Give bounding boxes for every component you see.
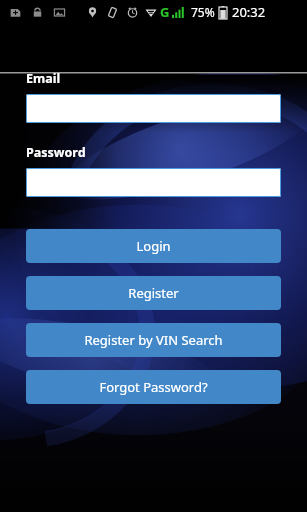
staticText: Password — [26, 144, 86, 161]
staticText: Register — [128, 284, 179, 302]
button[interactable] — [26, 168, 281, 197]
button[interactable]: Forgot Password? — [26, 370, 281, 404]
button[interactable]: Login — [26, 229, 281, 263]
staticText: Email — [26, 70, 61, 87]
staticText: 75% — [191, 4, 215, 20]
staticText: Forgot Password? — [99, 378, 208, 396]
staticText: G — [160, 3, 170, 21]
staticText: 20:32 — [232, 3, 266, 21]
button[interactable]: Register by VIN Search — [26, 323, 281, 357]
button[interactable]: Register — [26, 276, 281, 310]
button[interactable] — [26, 94, 281, 123]
staticText: Login — [136, 237, 171, 255]
staticText: Register by VIN Search — [84, 331, 223, 349]
